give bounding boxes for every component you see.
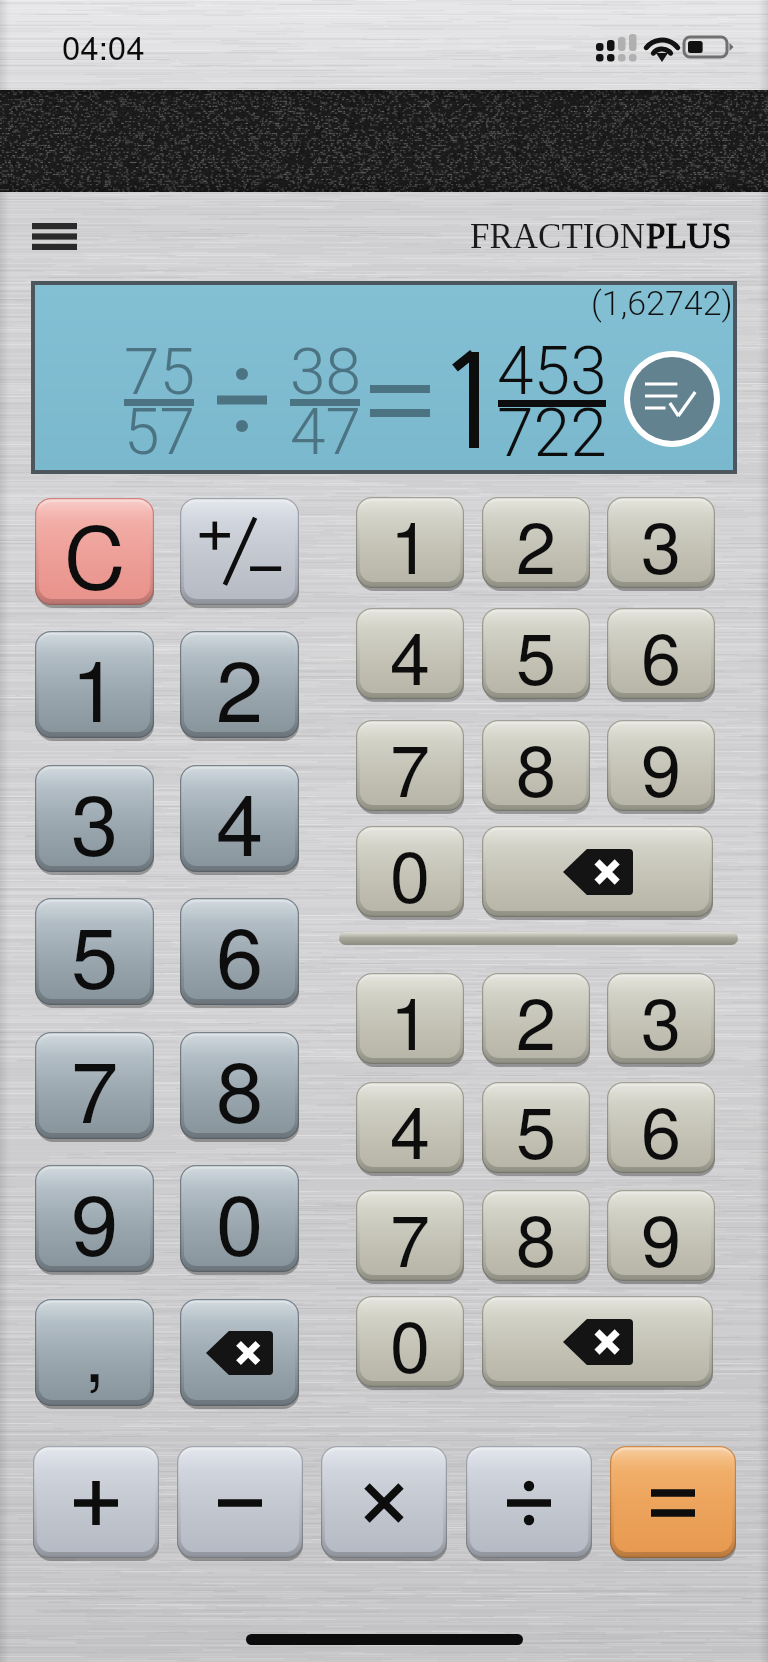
button[interactable]: 2 xyxy=(482,497,590,589)
button[interactable]: Backspace xyxy=(482,826,713,918)
staticText: 5 xyxy=(71,891,119,999)
button[interactable]: Multiply xyxy=(321,1446,447,1559)
staticText: 9 xyxy=(641,1184,682,1276)
button[interactable]: 9 xyxy=(607,720,715,812)
staticText: C xyxy=(64,491,126,599)
staticText: 4 xyxy=(216,758,264,866)
button[interactable]: C xyxy=(35,498,154,606)
staticText: 7 xyxy=(390,1184,431,1276)
button[interactable]: Plus minus xyxy=(180,498,299,606)
button[interactable]: 6 xyxy=(607,608,715,700)
button[interactable]: 1 xyxy=(35,631,154,739)
staticText: 7 xyxy=(71,1025,119,1133)
button[interactable]: 6 xyxy=(180,898,299,1006)
staticText: 1 xyxy=(390,967,431,1059)
button[interactable] xyxy=(35,285,733,470)
staticText: 0 xyxy=(390,1290,431,1382)
button[interactable]: 8 xyxy=(482,720,590,812)
button[interactable]: 3 xyxy=(35,765,154,873)
staticText: 2 xyxy=(216,624,264,732)
staticText: 57 xyxy=(124,395,195,470)
staticText: (1,62742) xyxy=(591,283,733,323)
staticText: 7 xyxy=(390,714,431,806)
staticText: , xyxy=(84,1295,106,1403)
button[interactable]: 3 xyxy=(607,497,715,589)
button[interactable]: 2 xyxy=(180,631,299,739)
staticText: 9 xyxy=(71,1158,119,1266)
staticText: 6 xyxy=(641,602,682,694)
button[interactable]: Plus xyxy=(33,1446,159,1559)
button[interactable]: Backspace xyxy=(482,1296,713,1388)
button[interactable]: 5 xyxy=(482,1082,590,1174)
button[interactable]: 1 xyxy=(356,973,464,1065)
staticText: 8 xyxy=(516,1184,557,1276)
button[interactable]: 7 xyxy=(35,1032,154,1140)
button[interactable]: Divide xyxy=(466,1446,592,1559)
button[interactable]: Backspace xyxy=(180,1299,299,1407)
button[interactable]: Show result options xyxy=(630,357,714,441)
button[interactable]: 4 xyxy=(180,765,299,873)
staticText: 38 xyxy=(290,335,361,410)
staticText: 0 xyxy=(216,1158,264,1266)
button[interactable]: 4 xyxy=(356,1082,464,1174)
button[interactable]: 7 xyxy=(356,720,464,812)
button[interactable]: Equals xyxy=(610,1446,736,1559)
staticText: 4 xyxy=(390,602,431,694)
staticText: 5 xyxy=(516,602,557,694)
staticText: 722 xyxy=(497,395,607,472)
staticText: 2 xyxy=(516,491,557,583)
button[interactable]: 0 xyxy=(356,826,464,918)
button[interactable]: 7 xyxy=(356,1190,464,1282)
staticText: 3 xyxy=(71,758,119,866)
button[interactable]: Menu xyxy=(18,206,90,266)
staticText: 8 xyxy=(216,1025,264,1133)
button[interactable]: , xyxy=(35,1299,154,1407)
staticText: 6 xyxy=(216,891,264,999)
button[interactable]: 9 xyxy=(35,1165,154,1273)
staticText: 4 xyxy=(390,1076,431,1168)
button[interactable]: 5 xyxy=(35,898,154,1006)
button[interactable]: 4 xyxy=(356,608,464,700)
staticText: 3 xyxy=(641,967,682,1059)
staticText: PLUS xyxy=(646,217,732,256)
button[interactable]: 2 xyxy=(482,973,590,1065)
staticText: 8 xyxy=(516,714,557,806)
button[interactable]: 8 xyxy=(180,1032,299,1140)
staticText: 75 xyxy=(124,335,195,410)
button[interactable]: 0 xyxy=(356,1296,464,1388)
staticText: 5 xyxy=(516,1076,557,1168)
staticText: 04:04 xyxy=(62,22,145,69)
staticText: 453 xyxy=(497,333,607,410)
staticText: 3 xyxy=(641,491,682,583)
button[interactable]: 1 xyxy=(356,497,464,589)
button[interactable]: 8 xyxy=(482,1190,590,1282)
button[interactable]: Minus xyxy=(177,1446,303,1559)
button[interactable]: 3 xyxy=(607,973,715,1065)
staticText: 2 xyxy=(516,967,557,1059)
staticText: FRACTION xyxy=(470,217,646,256)
staticText: 1 xyxy=(71,624,119,732)
staticText: 0 xyxy=(390,820,431,912)
button[interactable]: 9 xyxy=(607,1190,715,1282)
button[interactable]: 5 xyxy=(482,608,590,700)
staticText: 6 xyxy=(641,1076,682,1168)
staticText: 9 xyxy=(641,714,682,806)
button[interactable]: 0 xyxy=(180,1165,299,1273)
staticText: 1 xyxy=(390,491,431,583)
button[interactable]: 6 xyxy=(607,1082,715,1174)
staticText: 47 xyxy=(290,395,361,470)
